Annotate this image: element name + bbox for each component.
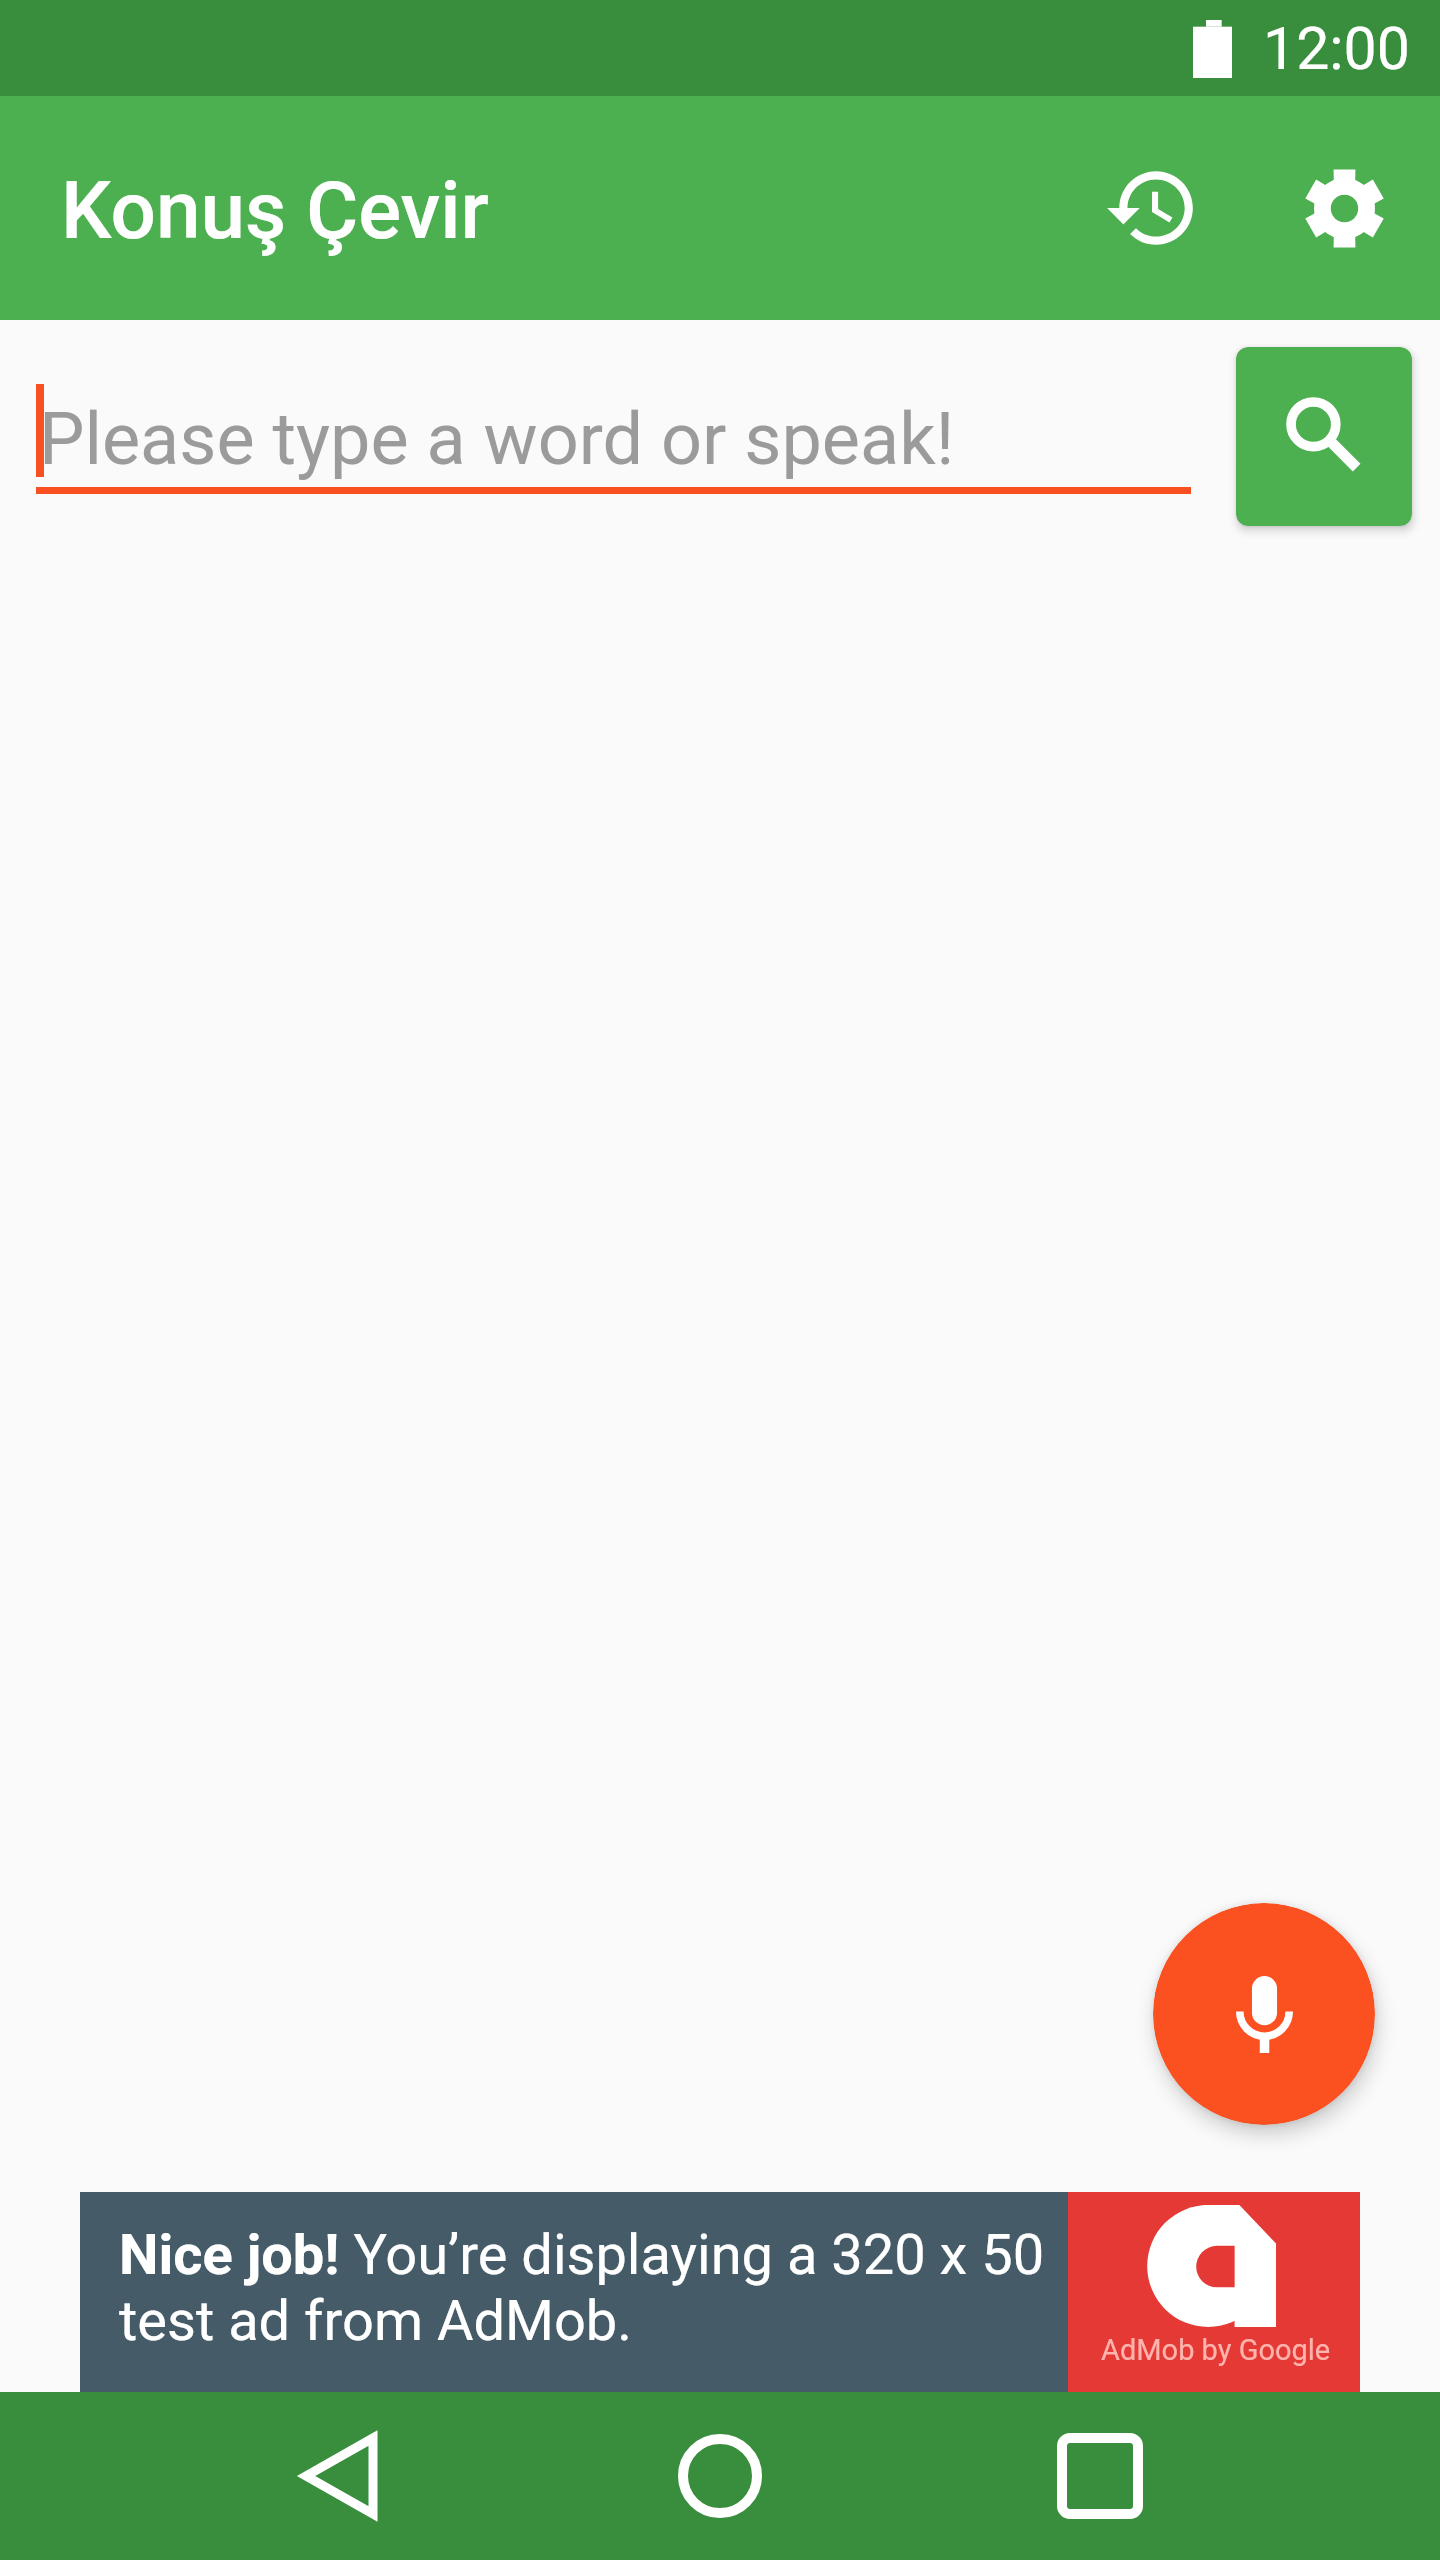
staticText: 12:00	[1263, 14, 1410, 83]
button[interactable]: Nice job! You’re displaying a 320 x 50	[80, 2192, 1360, 2392]
button[interactable]: Search	[1236, 347, 1412, 526]
button[interactable]: Please type a word or speak!	[36, 364, 1192, 538]
button[interactable]: Recents	[1026, 2402, 1174, 2550]
staticText: AdMob by Google	[1101, 2333, 1331, 2367]
button[interactable]: Speak	[1153, 1903, 1375, 2125]
staticText: Konuş Çevir	[61, 164, 489, 258]
button[interactable]: Home	[646, 2402, 794, 2550]
button[interactable]: History	[1077, 133, 1227, 283]
button[interactable]: Settings	[1269, 133, 1419, 283]
staticText: Nice job! You’re displaying a 320 x 50	[119, 2222, 1045, 2288]
staticText: test ad from AdMob.	[119, 2288, 633, 2354]
button[interactable]: Back	[265, 2402, 413, 2550]
staticText: Please type a word or speak!	[39, 397, 955, 481]
